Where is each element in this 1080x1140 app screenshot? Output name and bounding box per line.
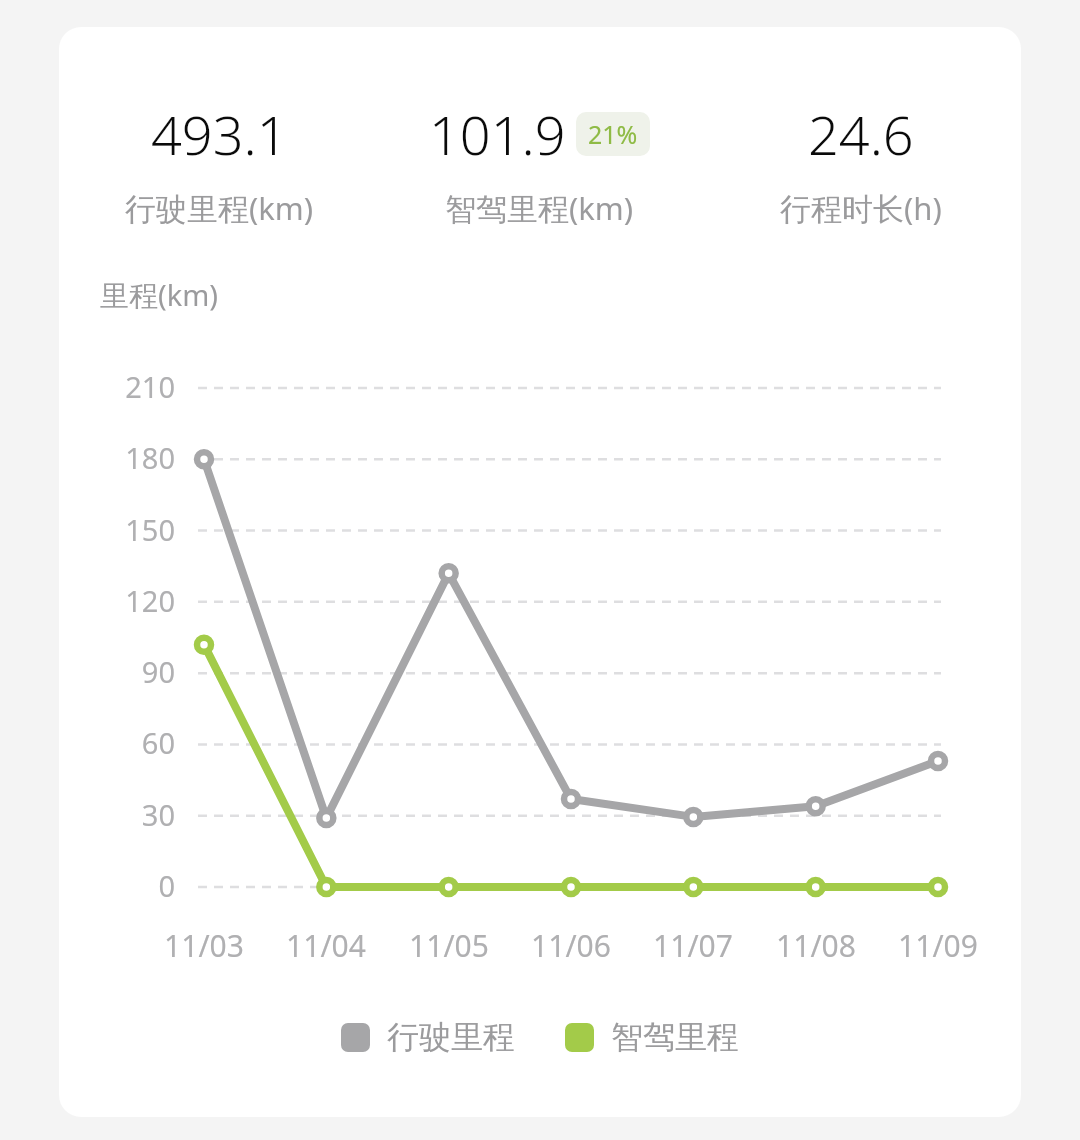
- staticText: 里程(km): [100, 275, 219, 315]
- staticText: 行驶里程(km): [125, 187, 314, 229]
- staticText: 21%: [588, 117, 638, 151]
- button[interactable]: 行驶里程: [341, 1017, 515, 1057]
- staticText: 11/04: [256, 925, 396, 966]
- staticText: 智驾里程(km): [445, 187, 634, 229]
- staticText: 210: [83, 367, 175, 406]
- staticText: 24.6: [808, 97, 914, 171]
- staticText: 11/09: [868, 925, 1008, 966]
- staticText: 493.1: [151, 97, 288, 171]
- staticText: 11/03: [134, 925, 274, 966]
- staticText: 101.9: [429, 97, 566, 171]
- button[interactable]: 101.9: [379, 97, 700, 229]
- staticText: 30: [83, 795, 175, 834]
- staticText: 行程时长(h): [780, 187, 942, 229]
- staticText: 180: [83, 438, 175, 477]
- staticText: 120: [83, 581, 175, 620]
- staticText: 60: [83, 723, 175, 762]
- button[interactable]: 24.6: [700, 97, 1021, 229]
- staticText: 90: [83, 652, 175, 691]
- staticText: 11/07: [623, 925, 763, 966]
- staticText: 11/06: [501, 925, 641, 966]
- staticText: 11/08: [746, 925, 886, 966]
- button[interactable]: 智驾里程: [565, 1017, 739, 1057]
- staticText: 11/05: [379, 925, 519, 966]
- staticText: 0: [83, 866, 175, 905]
- staticText: 150: [83, 510, 175, 549]
- staticText: 智驾里程: [611, 1017, 739, 1057]
- button[interactable]: 493.1: [59, 97, 379, 229]
- staticText: 行驶里程: [387, 1017, 515, 1057]
